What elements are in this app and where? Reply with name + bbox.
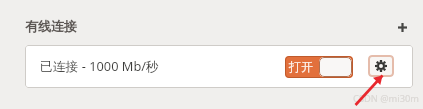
- staticText: 打开: [289, 59, 313, 74]
- staticText: 有线连接: [25, 18, 77, 34]
- button[interactable]: 已连接 - 1000 Mb/秒: [25, 45, 413, 88]
- staticText: 已连接 - 1000 Mb/秒: [40, 57, 159, 74]
- staticText: CSDN @mi30m: [353, 92, 420, 105]
- button[interactable]: Add connection: [391, 16, 413, 38]
- button[interactable]: 打开: [285, 56, 353, 78]
- button[interactable]: Settings: [368, 55, 394, 77]
